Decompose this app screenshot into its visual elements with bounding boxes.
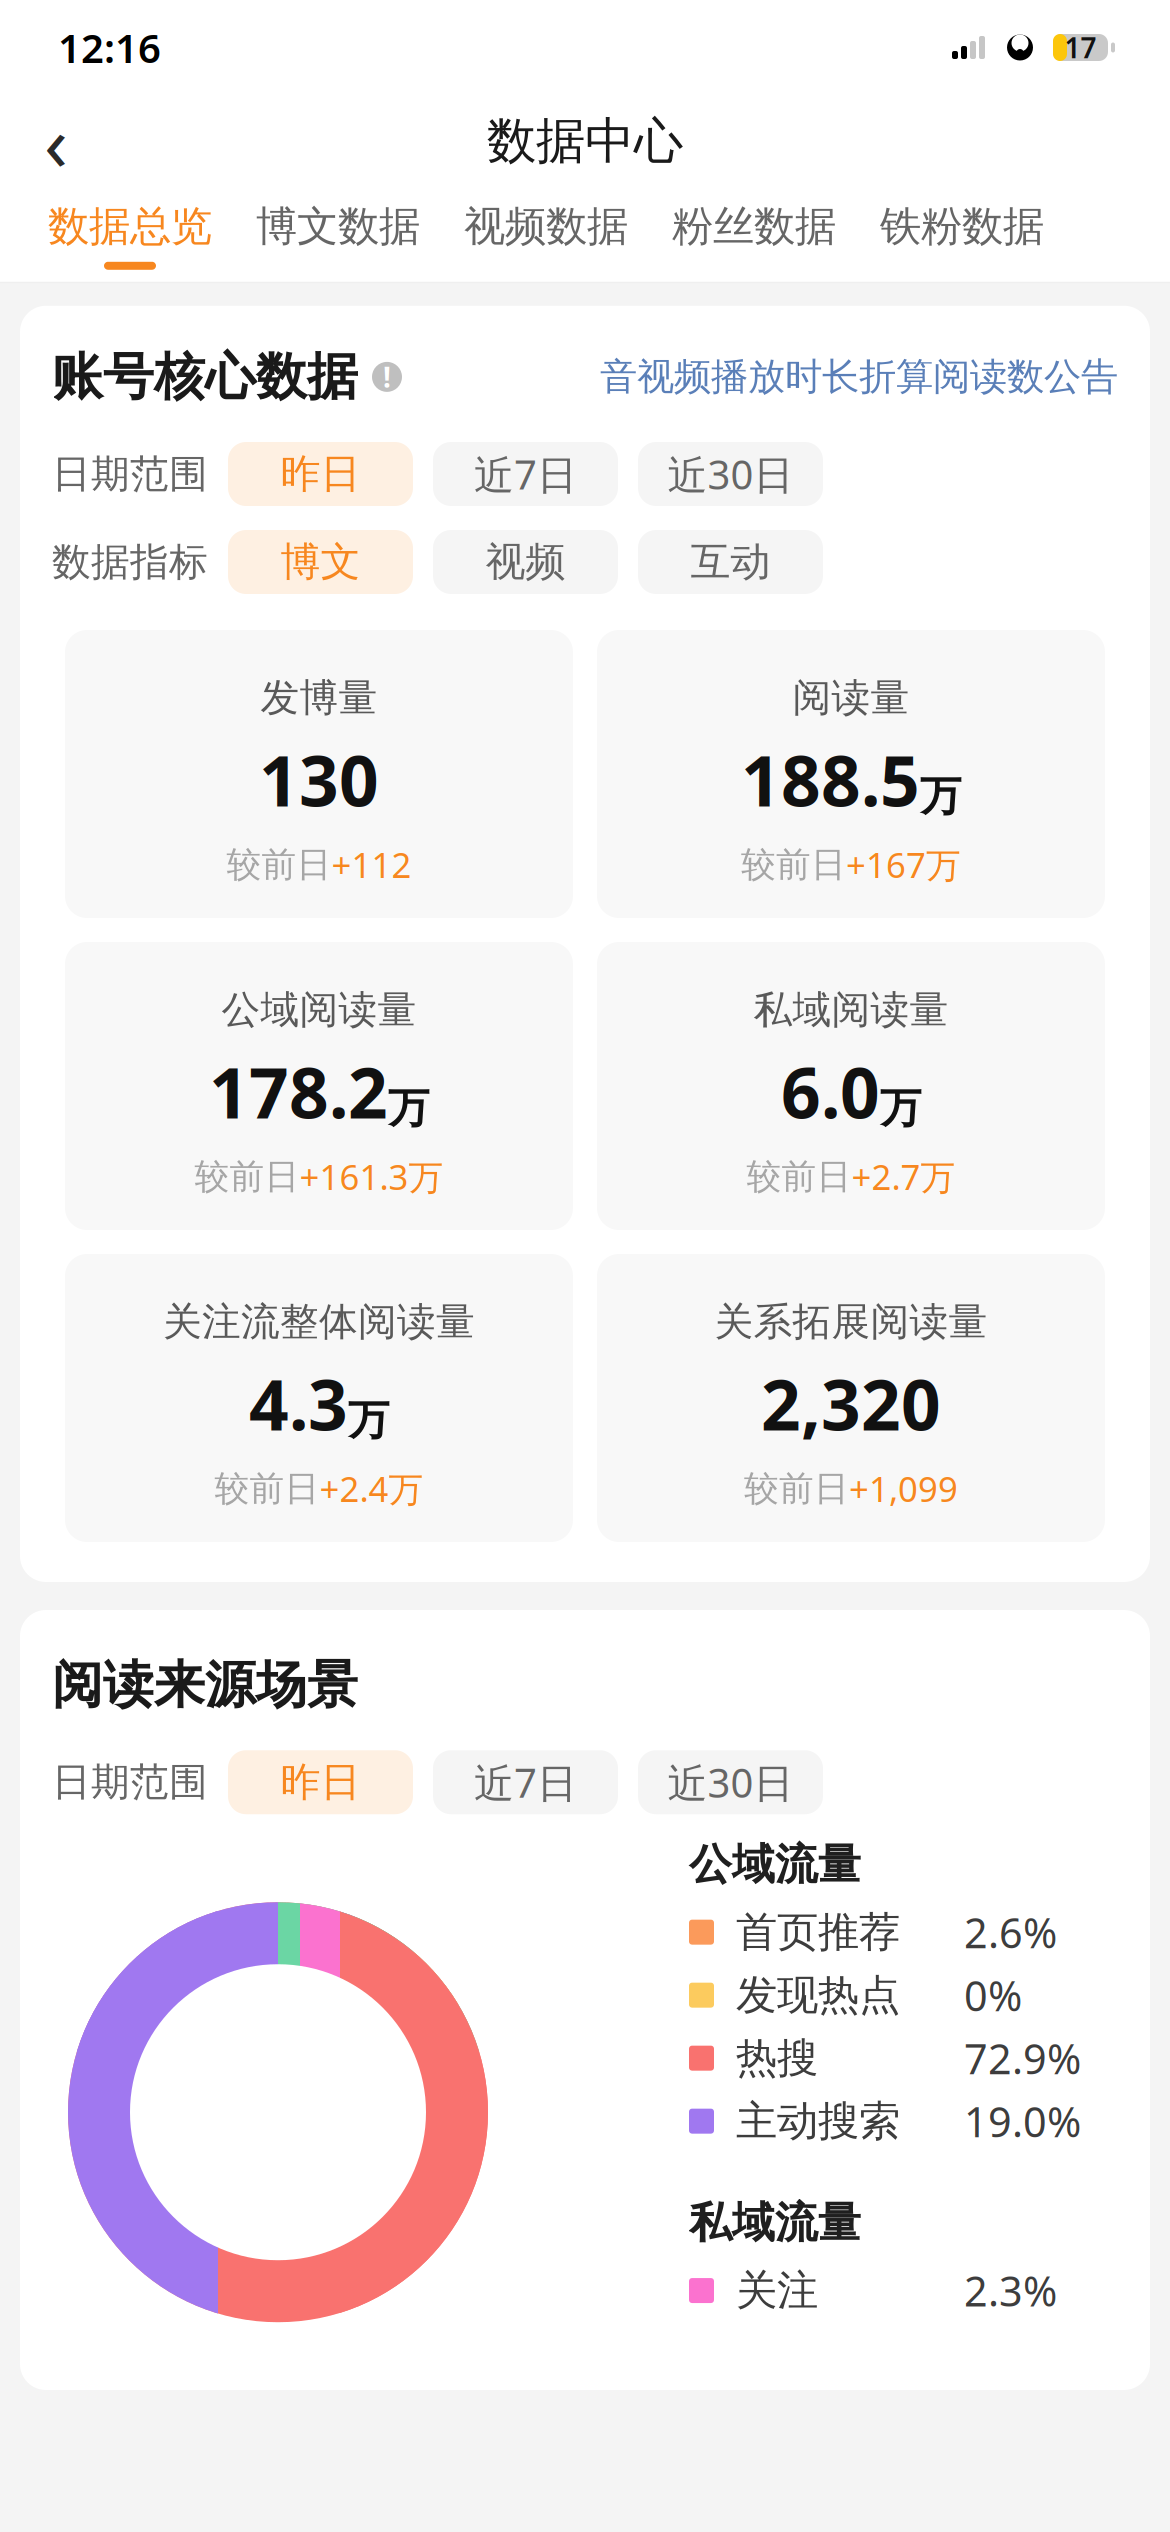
staticText: 万 [880, 1083, 921, 1134]
staticText: 日期范围 [52, 450, 208, 498]
staticText: 2,320 [761, 1357, 941, 1450]
staticText: 音视频播放时长折算阅读数公告 [600, 354, 1118, 400]
staticText: ! [383, 358, 391, 395]
staticText: 关注 [736, 2265, 818, 2316]
staticText: 阅读来源场景 [52, 1654, 358, 1716]
staticText: 近7日 [474, 447, 577, 500]
staticText: 2.3% [964, 2263, 1057, 2318]
staticText: 较前日 [744, 1467, 849, 1510]
staticText: 关注流整体阅读量 [163, 1298, 475, 1345]
staticText: 互动 [690, 537, 770, 586]
staticText: 较前日 [214, 1467, 319, 1510]
staticText: 博文 [280, 537, 360, 586]
button[interactable]: 铁粉数据 [858, 187, 1066, 282]
staticText: 17 [1064, 29, 1096, 66]
button[interactable]: 数据总览 [26, 187, 234, 282]
staticText: +1,099 [849, 1466, 958, 1512]
staticText: 昨日 [280, 449, 360, 498]
staticText: ‹ [44, 90, 68, 192]
button[interactable]: 昨日 [228, 1750, 413, 1814]
button[interactable]: 近30日 [638, 1750, 823, 1814]
button[interactable]: 视频数据 [442, 187, 650, 282]
staticText: 私域阅读量 [753, 986, 948, 1033]
staticText: 2.6% [964, 1905, 1057, 1960]
button[interactable]: 昨日 [228, 442, 413, 506]
staticText: +2.4万 [319, 1466, 423, 1512]
staticText: 私域流量 [689, 2197, 861, 2249]
staticText: 阅读量 [792, 674, 909, 721]
staticText: 4.3 [249, 1357, 348, 1450]
button[interactable]: 粉丝数据 [650, 187, 858, 282]
staticText: 6.0 [781, 1045, 880, 1138]
staticText: 粉丝数据 [672, 201, 836, 252]
staticText: 万 [348, 1395, 389, 1446]
staticText: 12:16 [58, 21, 161, 74]
staticText: 近30日 [667, 447, 793, 500]
staticText: 较前日 [741, 843, 846, 886]
staticText: 公域阅读量 [221, 986, 416, 1033]
staticText: 较前日 [746, 1155, 851, 1198]
staticText: 关系拓展阅读量 [714, 1298, 987, 1345]
button[interactable]: 音视频播放时长折算阅读数公告 [600, 354, 1118, 400]
staticText: 首页推荐 [736, 1907, 900, 1958]
staticText: 较前日 [194, 1155, 299, 1198]
staticText: 账号核心数据 [52, 346, 358, 408]
button[interactable]: 近7日 [433, 1750, 618, 1814]
button[interactable]: 视频 [433, 530, 618, 594]
staticText: 视频数据 [464, 201, 628, 252]
staticText: 188.5 [741, 733, 920, 826]
button[interactable]: 博文数据 [234, 187, 442, 282]
staticText: 铁粉数据 [880, 201, 1044, 252]
button[interactable]: 说明 [358, 358, 408, 395]
staticText: +167万 [846, 842, 961, 888]
staticText: 万 [920, 771, 961, 822]
staticText: 热搜 [736, 2033, 818, 2084]
staticText: 万 [388, 1083, 429, 1134]
staticText: 昨日 [280, 1758, 360, 1807]
staticText: 72.9% [964, 2031, 1081, 2086]
staticText: 博文数据 [256, 201, 420, 252]
staticText: 视频 [485, 537, 565, 586]
button[interactable]: 近7日 [433, 442, 618, 506]
staticText: 主动搜索 [736, 2096, 900, 2147]
staticText: 0% [964, 1968, 1022, 2023]
staticText: +2.7万 [851, 1154, 955, 1200]
staticText: 130 [259, 733, 379, 826]
staticText: +112 [331, 842, 411, 888]
staticText: 近30日 [667, 1756, 793, 1809]
staticText: 178.2 [209, 1045, 388, 1138]
button[interactable]: 互动 [638, 530, 823, 594]
staticText: 数据指标 [52, 538, 208, 586]
staticText: 发博量 [260, 674, 377, 721]
button[interactable]: Back [16, 101, 96, 181]
staticText: 发现热点 [736, 1970, 900, 2021]
staticText: 日期范围 [52, 1758, 208, 1806]
staticText: 较前日 [226, 843, 331, 886]
button[interactable]: 博文 [228, 530, 413, 594]
staticText: 19.0% [964, 2094, 1081, 2149]
staticText: +161.3万 [299, 1154, 443, 1200]
staticText: 公域流量 [689, 1838, 861, 1891]
staticText: 近7日 [474, 1756, 577, 1809]
staticText: 数据总览 [48, 201, 212, 252]
button[interactable]: 近30日 [638, 442, 823, 506]
staticText: 数据中心 [487, 111, 683, 171]
